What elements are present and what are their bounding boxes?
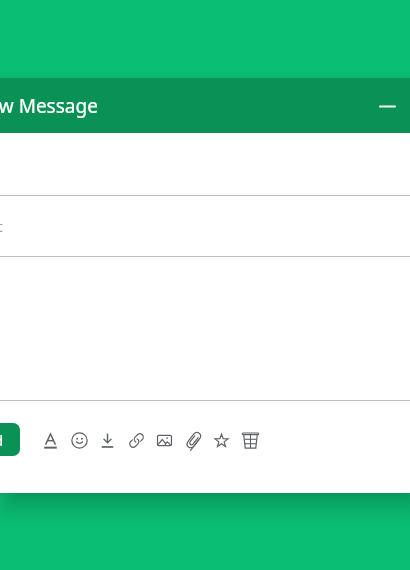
button[interactable]: Minimize	[369, 88, 405, 124]
button[interactable]: Insert link	[122, 426, 150, 454]
staticText: New Message	[0, 93, 98, 119]
button[interactable]: Discard draft	[236, 426, 264, 454]
staticText: Send	[0, 430, 4, 450]
button[interactable]: Formatting options	[36, 426, 64, 454]
staticText: Subject	[0, 216, 3, 236]
button[interactable]: Confidential mode	[207, 426, 235, 454]
button[interactable]: Send	[0, 423, 20, 456]
button[interactable]: Attach file	[179, 426, 207, 454]
button[interactable]: Insert from Drive	[93, 426, 121, 454]
button[interactable]: Insert photo	[150, 426, 178, 454]
button[interactable]: Insert emoji	[65, 426, 93, 454]
